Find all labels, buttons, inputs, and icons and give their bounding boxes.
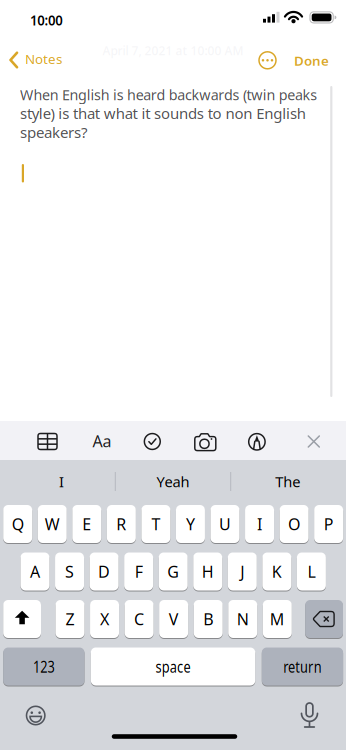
button[interactable]: I — [245, 504, 274, 543]
button[interactable]: More — [254, 47, 280, 73]
staticText: Notes — [25, 50, 62, 68]
staticText: X — [100, 608, 109, 630]
staticText: 10:00 — [28, 10, 64, 30]
staticText: K — [272, 561, 282, 582]
button[interactable]: U — [210, 504, 239, 543]
staticText: I — [59, 472, 64, 491]
button[interactable]: N — [228, 599, 257, 638]
staticText: Z — [65, 608, 74, 630]
button[interactable]: Insert table — [27, 422, 67, 461]
button[interactable]: Done — [294, 45, 329, 75]
button[interactable]: Checklist — [132, 422, 172, 461]
staticText: 123 — [30, 656, 57, 677]
staticText: L — [307, 561, 315, 582]
button[interactable]: H — [193, 552, 222, 591]
button[interactable]: Y — [176, 504, 205, 543]
button[interactable]: S — [55, 552, 84, 591]
staticText: Yeah — [156, 472, 189, 491]
button[interactable]: K — [262, 552, 291, 591]
staticText: A — [30, 561, 40, 582]
staticText: O — [288, 513, 300, 535]
button[interactable]: W — [38, 504, 67, 543]
staticText: H — [202, 561, 214, 582]
staticText: space — [151, 656, 195, 677]
button[interactable]: Q — [3, 504, 32, 543]
button[interactable]: A — [20, 552, 49, 591]
button[interactable]: I — [11, 464, 111, 498]
staticText: G — [167, 561, 179, 582]
staticText: J — [240, 561, 244, 582]
staticText: Y — [186, 513, 195, 535]
button[interactable]: V — [159, 599, 188, 638]
staticText: V — [169, 608, 179, 630]
button[interactable]: M — [263, 599, 292, 638]
staticText: T — [151, 513, 160, 535]
button[interactable]: return — [262, 647, 343, 686]
button[interactable]: G — [159, 552, 188, 591]
button[interactable]: O — [280, 504, 309, 543]
button[interactable]: Yeah — [123, 464, 223, 498]
button[interactable]: Emoji — [16, 695, 56, 735]
staticText: S — [65, 561, 74, 582]
staticText: B — [203, 608, 213, 630]
button[interactable]: X — [90, 599, 119, 638]
button[interactable]: The — [238, 464, 338, 498]
button[interactable]: P — [314, 504, 343, 543]
button[interactable]: R — [107, 504, 136, 543]
staticText: Q — [12, 513, 24, 535]
button[interactable]: 123 — [3, 647, 84, 686]
staticText: E — [82, 513, 91, 535]
button[interactable]: E — [72, 504, 101, 543]
button[interactable]: B — [194, 599, 223, 638]
staticText: speakers? — [20, 122, 85, 142]
button[interactable]: Delete — [305, 599, 343, 638]
staticText: The — [275, 472, 300, 491]
button[interactable]: T — [141, 504, 170, 543]
staticText: Aa — [92, 430, 111, 452]
staticText: C — [134, 608, 144, 630]
button[interactable]: Dismiss keyboard toolbar — [294, 422, 334, 461]
button[interactable]: L — [297, 552, 326, 591]
button[interactable]: C — [125, 599, 154, 638]
staticText: U — [219, 513, 231, 535]
button[interactable]: Markup — [237, 422, 277, 461]
staticText: P — [324, 513, 334, 535]
staticText: April 7, 2021 at 10:00 AM — [102, 42, 243, 58]
staticText: When English is heard backwards (twin pe… — [20, 85, 325, 104]
staticText: return — [278, 656, 326, 677]
button[interactable]: Shift — [3, 599, 41, 638]
button[interactable]: space — [91, 647, 255, 686]
staticText: style) is that what it sounds to non Eng… — [20, 104, 300, 123]
button[interactable]: Dictate — [289, 695, 329, 735]
staticText: F — [135, 561, 143, 582]
button[interactable]: Z — [55, 599, 84, 638]
button[interactable]: Notes — [10, 45, 62, 75]
staticText: N — [237, 608, 249, 630]
staticText: D — [98, 561, 110, 582]
button[interactable]: Insert photo — [185, 423, 225, 462]
staticText: M — [270, 608, 285, 630]
button[interactable]: F — [124, 552, 153, 591]
button[interactable]: Text format — [82, 421, 122, 460]
staticText: W — [45, 513, 60, 535]
button[interactable]: D — [90, 552, 119, 591]
button[interactable]: J — [228, 552, 257, 591]
staticText: I — [257, 513, 262, 535]
staticText: Done — [294, 52, 329, 69]
staticText: R — [116, 513, 126, 535]
